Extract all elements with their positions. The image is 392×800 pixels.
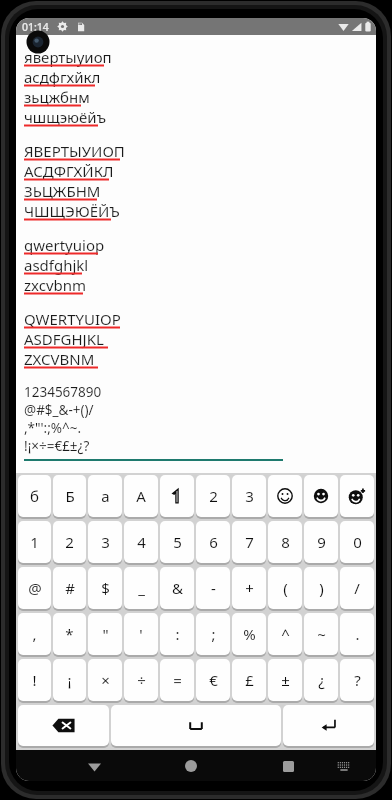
button[interactable]: Switch keyboard bbox=[329, 751, 359, 781]
button[interactable]: 4 bbox=[124, 521, 158, 563]
staticText: 3 bbox=[101, 532, 110, 552]
staticText: ± bbox=[281, 670, 290, 690]
button[interactable]: ± bbox=[268, 659, 302, 701]
staticText: асдфгхйкл bbox=[24, 67, 101, 87]
button[interactable]: Home bbox=[176, 751, 206, 781]
button[interactable]: ( bbox=[268, 567, 302, 609]
button[interactable]: Space bbox=[111, 705, 281, 746]
button[interactable]: явертыуиоп bbox=[24, 47, 368, 461]
button[interactable]: ! bbox=[18, 659, 51, 701]
button[interactable]: " bbox=[88, 613, 122, 655]
staticText: + bbox=[245, 578, 254, 598]
staticText: = bbox=[173, 670, 182, 690]
staticText: ~ bbox=[317, 624, 326, 644]
button[interactable]: = bbox=[160, 659, 194, 701]
staticText: * bbox=[65, 624, 74, 644]
button[interactable]: # bbox=[53, 567, 86, 609]
button[interactable]: % bbox=[232, 613, 266, 655]
staticText: QWERTYUIOP bbox=[24, 309, 121, 329]
button[interactable]: ) bbox=[304, 567, 338, 609]
button[interactable]: ; bbox=[196, 613, 230, 655]
button[interactable]: × bbox=[88, 659, 122, 701]
button[interactable]: Backspace bbox=[18, 705, 109, 746]
button[interactable]: 9 bbox=[304, 521, 338, 563]
button[interactable]: ÷ bbox=[124, 659, 158, 701]
staticText: " bbox=[102, 624, 109, 644]
button[interactable]: Б bbox=[53, 475, 86, 517]
button[interactable]: _ bbox=[124, 567, 158, 609]
button[interactable]: Recents bbox=[273, 751, 303, 781]
button[interactable]: - bbox=[196, 567, 230, 609]
staticText: ! bbox=[32, 670, 37, 690]
staticText: ( bbox=[283, 578, 288, 598]
staticText: ' bbox=[139, 624, 143, 644]
button[interactable]: Outlined one bbox=[160, 475, 194, 517]
button[interactable]: € bbox=[196, 659, 230, 701]
button[interactable]: ~ bbox=[304, 613, 338, 655]
button[interactable]: : bbox=[160, 613, 194, 655]
button[interactable]: Back bbox=[79, 751, 109, 781]
button[interactable]: , bbox=[18, 613, 51, 655]
staticText: @#$_&-+()/ bbox=[24, 401, 94, 419]
button[interactable]: Outline smiley bbox=[268, 475, 302, 517]
button[interactable]: ¿ bbox=[304, 659, 338, 701]
button[interactable]: ¡ bbox=[53, 659, 86, 701]
button[interactable]: 5 bbox=[160, 521, 194, 563]
staticText: - bbox=[211, 578, 216, 598]
staticText: ) bbox=[319, 578, 324, 598]
staticText: £ bbox=[245, 670, 254, 690]
button[interactable]: 7 bbox=[232, 521, 266, 563]
staticText: ¡ bbox=[67, 670, 72, 690]
staticText: ,*"':;%^~. bbox=[24, 419, 82, 437]
button[interactable]: @ bbox=[18, 567, 51, 609]
staticText: ZXCVBNM bbox=[24, 349, 95, 369]
button[interactable]: Filled smiley bbox=[304, 475, 338, 517]
staticText: : bbox=[175, 624, 180, 644]
staticText: 0 bbox=[353, 532, 362, 552]
button[interactable]: ' bbox=[124, 613, 158, 655]
staticText: 1 bbox=[30, 532, 39, 552]
staticText: $ bbox=[101, 578, 110, 598]
staticText: а bbox=[101, 486, 110, 506]
button[interactable]: 2 bbox=[196, 475, 230, 517]
staticText: ? bbox=[354, 670, 361, 690]
button[interactable]: / bbox=[340, 567, 374, 609]
button[interactable]: $ bbox=[88, 567, 122, 609]
staticText: зьцжбнм bbox=[24, 87, 90, 107]
button[interactable]: б bbox=[18, 475, 51, 517]
staticText: 6 bbox=[209, 532, 218, 552]
button[interactable]: Smiley with sparkle bbox=[340, 475, 374, 517]
staticText: явертыуиоп bbox=[24, 47, 112, 67]
button[interactable]: ^ bbox=[268, 613, 302, 655]
button[interactable]: 3 bbox=[232, 475, 266, 517]
staticText: !¡×÷=€£±¿? bbox=[24, 437, 90, 455]
staticText: # bbox=[65, 578, 75, 598]
staticText: 9 bbox=[317, 532, 326, 552]
button[interactable]: 1 bbox=[18, 521, 51, 563]
button[interactable]: & bbox=[160, 567, 194, 609]
button[interactable]: 6 bbox=[196, 521, 230, 563]
button[interactable]: а bbox=[88, 475, 122, 517]
staticText: ; bbox=[211, 624, 216, 644]
staticText: × bbox=[101, 670, 110, 690]
button[interactable]: 0 bbox=[340, 521, 374, 563]
staticText: qwertyuiop bbox=[24, 235, 105, 255]
staticText: 01:14 bbox=[22, 20, 49, 34]
staticText: 7 bbox=[245, 532, 254, 552]
button[interactable]: 3 bbox=[88, 521, 122, 563]
staticText: 2 bbox=[65, 532, 74, 552]
button[interactable]: 2 bbox=[53, 521, 86, 563]
staticText: ЗЬЦЖБНМ bbox=[24, 181, 101, 201]
button[interactable]: £ bbox=[232, 659, 266, 701]
staticText: zxcvbnm bbox=[24, 275, 87, 295]
button[interactable]: . bbox=[340, 613, 374, 655]
button[interactable]: * bbox=[53, 613, 86, 655]
button[interactable]: + bbox=[232, 567, 266, 609]
staticText: asdfghjkl bbox=[24, 255, 89, 275]
button[interactable]: 8 bbox=[268, 521, 302, 563]
button[interactable]: А bbox=[124, 475, 158, 517]
staticText: @ bbox=[28, 578, 42, 598]
button[interactable]: ? bbox=[340, 659, 374, 701]
staticText: чшщэюёйъ bbox=[24, 107, 107, 127]
button[interactable]: Enter bbox=[283, 705, 374, 746]
